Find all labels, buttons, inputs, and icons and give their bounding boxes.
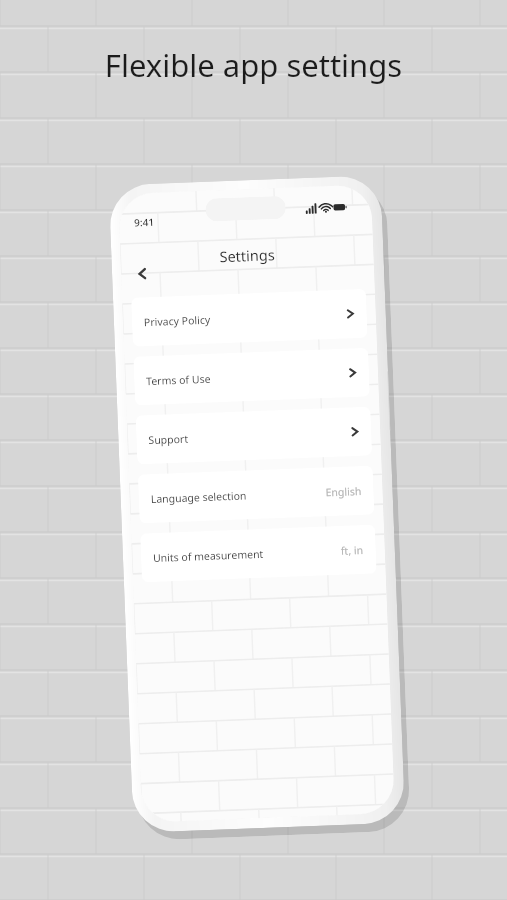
- button[interactable]: Units of measurement: [140, 524, 377, 582]
- staticText: English: [325, 484, 362, 499]
- staticText: Support: [148, 432, 189, 447]
- button[interactable]: Privacy Policy: [131, 289, 368, 347]
- staticText: Privacy Policy: [144, 313, 211, 329]
- staticText: Settings: [219, 244, 276, 266]
- button[interactable]: Support: [135, 407, 372, 465]
- button[interactable]: Back: [129, 260, 156, 287]
- staticText: 9:41: [134, 215, 154, 229]
- button[interactable]: Terms of Use: [133, 348, 370, 406]
- staticText: Units of measurement: [153, 547, 264, 565]
- staticText: Flexible app settings: [0, 44, 507, 86]
- button[interactable]: Language selection: [138, 465, 374, 523]
- staticText: Terms of Use: [146, 372, 211, 388]
- staticText: ft, in: [341, 543, 364, 558]
- staticText: Language selection: [150, 488, 247, 506]
